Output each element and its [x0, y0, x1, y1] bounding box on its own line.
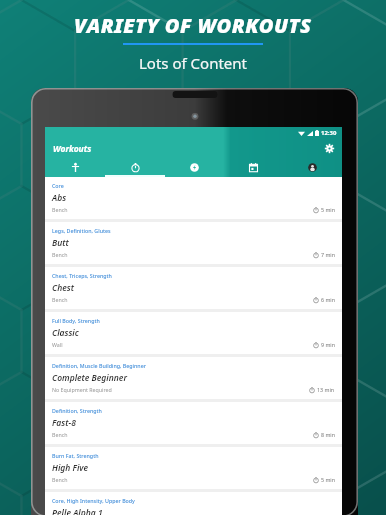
- staticText: 7 min: [321, 251, 335, 258]
- staticText: 12:30: [321, 129, 337, 137]
- button[interactable]: Calendar: [224, 158, 283, 177]
- staticText: Bench: [52, 431, 68, 438]
- button[interactable]: Core: [45, 177, 342, 219]
- staticText: Abs: [52, 192, 67, 204]
- staticText: Core: [52, 182, 64, 189]
- staticText: Classic: [52, 327, 79, 339]
- staticText: 5 min: [321, 476, 335, 483]
- button[interactable]: Core, High Intensity, Upper Body: [45, 492, 342, 515]
- button[interactable]: Legs, Definition, Glutes: [45, 222, 342, 264]
- staticText: Pelle Alpha 1: [52, 507, 103, 515]
- staticText: Chest, Triceps, Strength: [52, 272, 112, 279]
- staticText: Bench: [52, 206, 68, 213]
- staticText: Definition, Strength: [52, 407, 102, 414]
- staticText: VARIETY OF WORKOUTS: [74, 12, 312, 39]
- staticText: Fast-8: [52, 417, 76, 429]
- staticText: No Equipment Required: [52, 386, 112, 393]
- button[interactable]: Profile: [283, 158, 342, 177]
- staticText: Core, High Intensity, Upper Body: [52, 497, 135, 504]
- button[interactable]: Timer: [105, 158, 165, 177]
- staticText: 6 min: [321, 296, 335, 303]
- button[interactable]: Definition, Muscle Building, Beginner: [45, 357, 342, 399]
- staticText: Full Body, Strength: [52, 317, 100, 324]
- button[interactable]: Full Body, Strength: [45, 312, 342, 354]
- staticText: Burn Fat, Strength: [52, 452, 99, 459]
- staticText: Complete Beginner: [52, 372, 127, 384]
- staticText: Bench: [52, 476, 68, 483]
- staticText: Butt: [52, 237, 69, 249]
- staticText: Definition, Muscle Building, Beginner: [52, 362, 146, 369]
- staticText: 8 min: [321, 431, 335, 438]
- button[interactable]: Burn Fat, Strength: [45, 447, 342, 489]
- staticText: Legs, Definition, Glutes: [52, 227, 111, 234]
- staticText: 13 min: [317, 386, 335, 393]
- staticText: Wall: [52, 341, 63, 348]
- staticText: Bench: [52, 296, 68, 303]
- staticText: Workouts: [53, 143, 92, 155]
- button[interactable]: Settings: [322, 141, 337, 156]
- staticText: Lots of Content: [139, 53, 247, 73]
- staticText: Chest: [52, 282, 74, 294]
- button[interactable]: Definition, Strength: [45, 402, 342, 444]
- button[interactable]: Workouts: [165, 158, 224, 177]
- staticText: 5 min: [321, 206, 335, 213]
- staticText: 9 min: [321, 341, 335, 348]
- staticText: Bench: [52, 251, 68, 258]
- button[interactable]: Body: [45, 158, 105, 177]
- button[interactable]: Chest, Triceps, Strength: [45, 267, 342, 309]
- staticText: High Five: [52, 462, 89, 474]
